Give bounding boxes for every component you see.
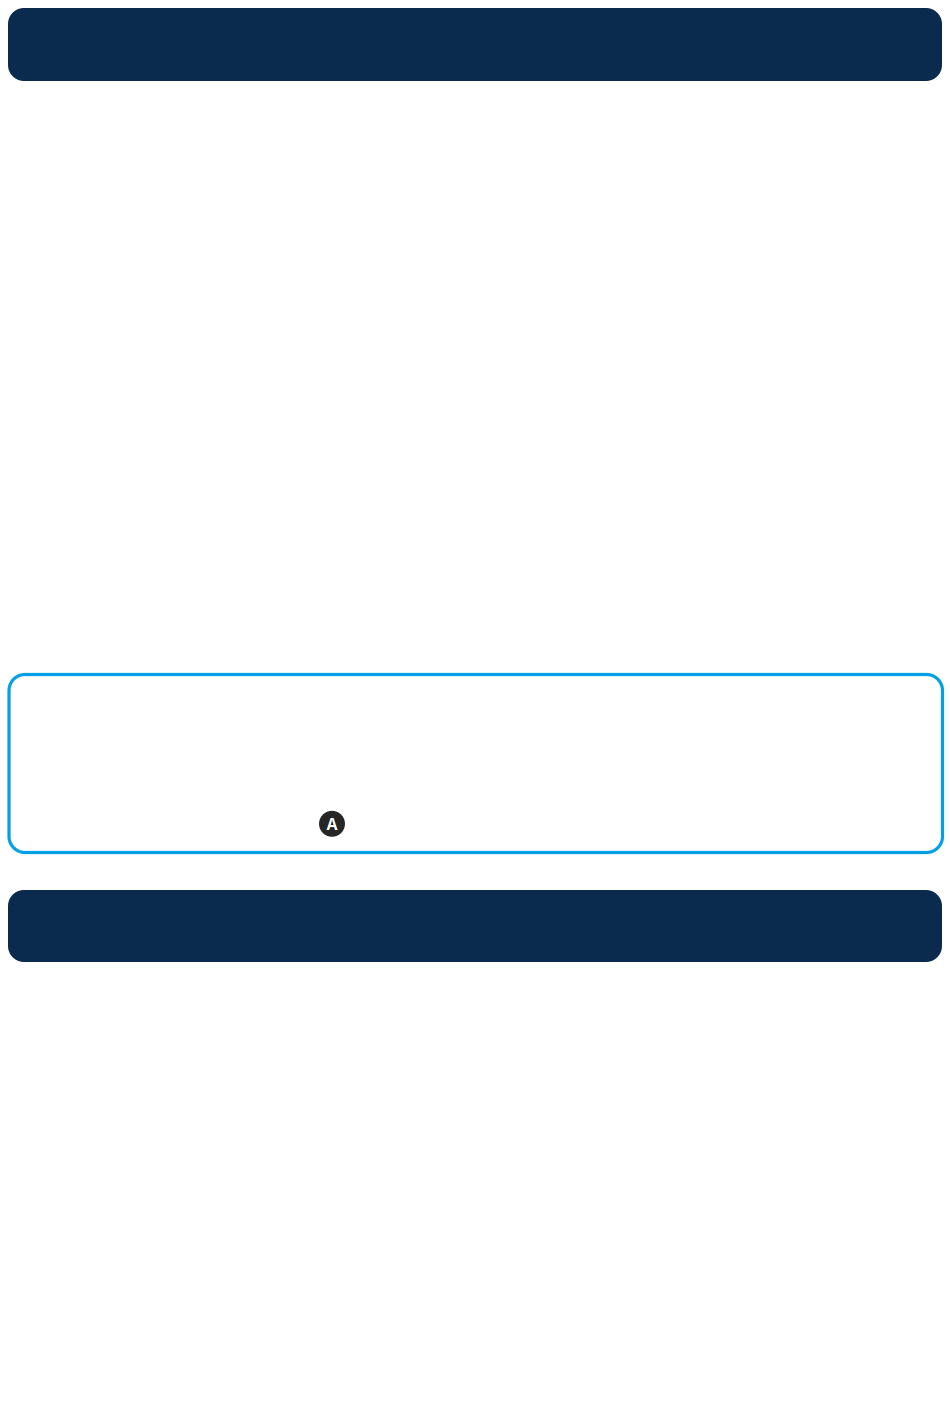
button[interactable]: Account (319, 811, 345, 837)
button[interactable]: Tab bar (8, 890, 942, 962)
button[interactable]: Navigation bar (8, 8, 942, 81)
staticText: A (326, 813, 337, 834)
